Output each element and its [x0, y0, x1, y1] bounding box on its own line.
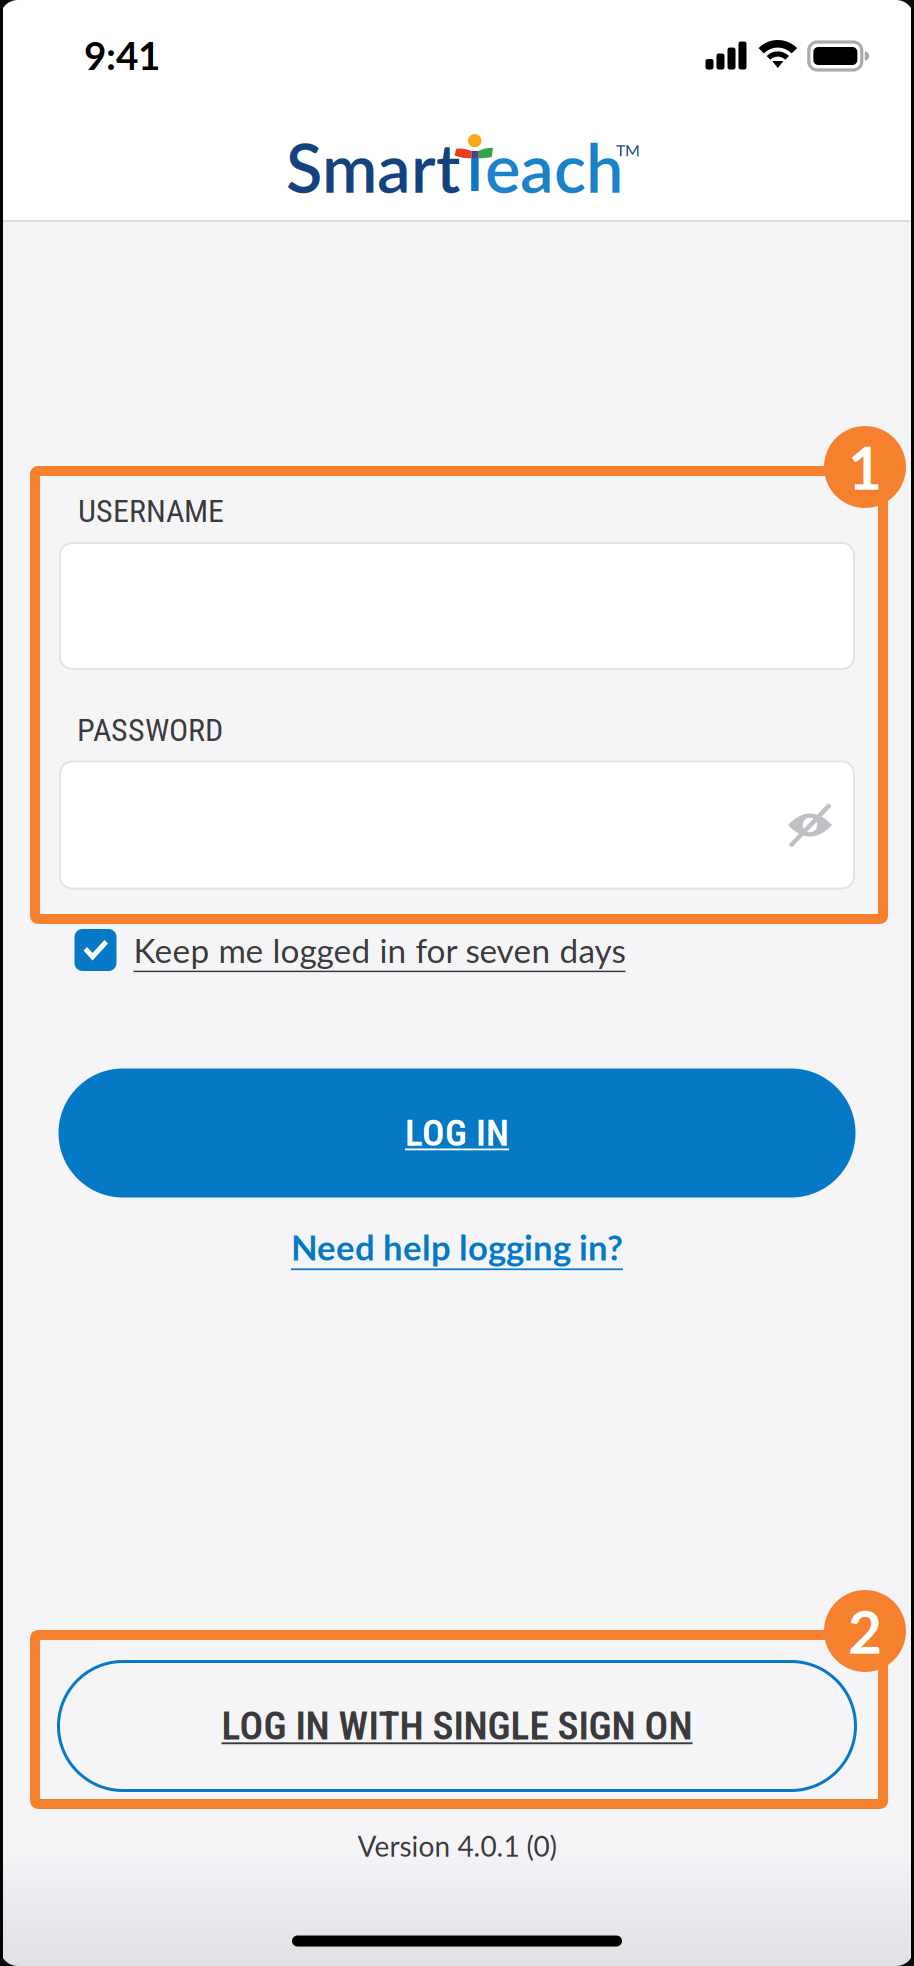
staticText: LOG IN WITH SINGLE SIGN ON [221, 1703, 692, 1749]
staticText: TM [616, 140, 640, 160]
staticText: 1 [848, 432, 882, 502]
button[interactable]: LOG IN [58, 1068, 855, 1197]
staticText: each [485, 127, 623, 207]
button[interactable]: Need help logging in? [247, 1215, 667, 1279]
staticText: Need help logging in? [291, 1226, 623, 1268]
staticText: LOG IN [405, 1111, 509, 1155]
button[interactable]: Show password [772, 787, 848, 863]
staticText: Smart [286, 127, 460, 207]
staticText: USERNAME [78, 492, 224, 530]
button[interactable]: LOG IN WITH SINGLE SIGN ON [58, 1661, 855, 1790]
staticText: 9:41 [84, 32, 160, 78]
button[interactable]: Keep me logged in for seven days [74, 929, 625, 971]
staticText: Version 4.0.1 (0) [357, 1829, 556, 1863]
staticText: Keep me logged in for seven days [133, 930, 625, 970]
staticText: 2 [848, 1596, 882, 1666]
staticText: PASSWORD [77, 711, 223, 749]
